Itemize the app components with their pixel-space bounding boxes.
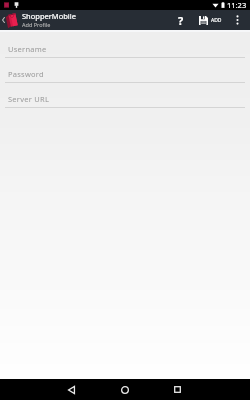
button[interactable]: Password — [0, 66, 250, 91]
staticText: Username — [8, 44, 47, 54]
staticText: Add Profile — [22, 21, 51, 28]
button[interactable]: Help — [173, 10, 189, 30]
staticText: Password — [8, 69, 44, 79]
button[interactable]: Username — [0, 41, 250, 66]
button[interactable]: Navigate up — [0, 10, 6, 30]
button[interactable]: More options — [231, 10, 243, 30]
staticText: ADD — [211, 17, 222, 24]
button[interactable]: Server URL — [0, 91, 250, 116]
button[interactable]: ADD — [197, 10, 224, 30]
staticText: ShopperMobile — [22, 11, 76, 21]
button[interactable]: Recent apps — [167, 379, 188, 400]
staticText: 11:23 — [227, 0, 247, 10]
staticText: Server URL — [8, 94, 50, 104]
button[interactable]: Home — [114, 379, 135, 400]
button[interactable]: Back — [61, 379, 82, 400]
staticText: ? — [178, 13, 184, 28]
